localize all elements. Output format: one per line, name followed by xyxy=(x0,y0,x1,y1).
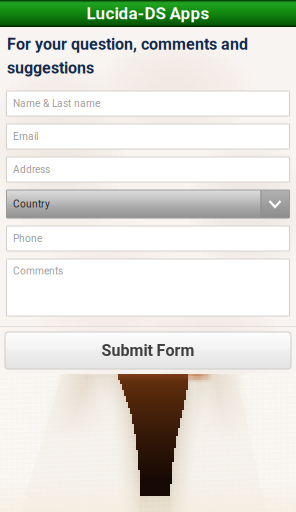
staticText: For your question, comments and xyxy=(7,35,248,54)
staticText: Country xyxy=(13,198,50,210)
staticText: suggestions xyxy=(7,59,94,78)
button[interactable]: Submit Form xyxy=(5,332,291,369)
button[interactable]: Name & Last name xyxy=(6,91,289,116)
button[interactable]: Comments xyxy=(6,259,289,316)
button[interactable]: Country xyxy=(6,190,289,218)
staticText: Phone xyxy=(13,233,42,244)
staticText: Name & Last name xyxy=(13,98,100,109)
staticText: Address xyxy=(13,164,50,175)
button[interactable]: Phone xyxy=(6,226,289,251)
button[interactable]: Email xyxy=(6,124,289,149)
staticText: Email xyxy=(13,131,38,142)
button[interactable]: Address xyxy=(6,157,289,182)
staticText: Comments xyxy=(13,265,63,277)
staticText: Lucida-DS Apps xyxy=(86,3,209,23)
staticText: Submit Form xyxy=(101,341,194,360)
